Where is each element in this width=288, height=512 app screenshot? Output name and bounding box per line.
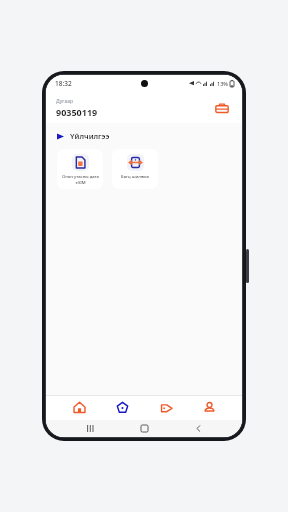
staticText: Дугаар <box>56 98 74 105</box>
button[interactable]: Home <box>134 420 154 437</box>
staticText: Багц шилжих <box>121 174 149 180</box>
staticText: Үйлчилгээ <box>70 131 110 141</box>
button[interactable]: Олон утасны дата eSIM <box>57 149 103 189</box>
button[interactable]: Back <box>188 420 208 437</box>
button[interactable]: Багц шилжих <box>112 149 158 189</box>
staticText: 13% <box>217 80 228 87</box>
button[interactable]: Урамшуулал <box>148 395 184 420</box>
button[interactable]: Шагнал <box>104 395 140 420</box>
staticText: 18:32 <box>55 79 72 88</box>
staticText: Олон утасны дата eSIM <box>62 174 99 185</box>
button[interactable]: Профайл <box>191 395 227 420</box>
button[interactable]: Recents <box>80 420 100 437</box>
button[interactable]: Сагс <box>212 98 232 118</box>
button[interactable]: Нүүр <box>61 395 97 420</box>
staticText: 90350119 <box>56 106 98 118</box>
